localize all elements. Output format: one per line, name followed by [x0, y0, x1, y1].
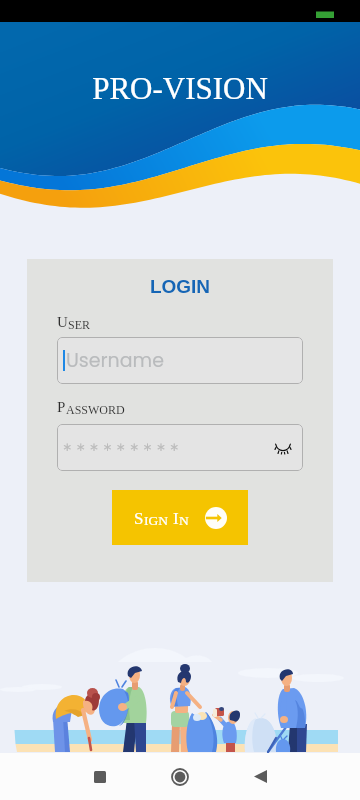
staticText: Username — [66, 347, 164, 374]
button[interactable]: Username — [57, 337, 303, 384]
staticText: PRO-VISION — [0, 71, 360, 105]
button[interactable]: S — [112, 490, 248, 545]
staticText: LOGIN — [27, 276, 333, 297]
staticText: I — [173, 509, 179, 528]
staticText: SER — [68, 318, 91, 331]
button[interactable]: ∗ ∗ ∗ ∗ ∗ ∗ ∗ ∗ ∗ — [57, 424, 303, 471]
staticText: S — [134, 509, 144, 528]
staticText: ∗ ∗ ∗ ∗ ∗ ∗ ∗ ∗ ∗ — [62, 440, 180, 454]
staticText: N — [179, 513, 189, 528]
button[interactable]: Back — [220, 753, 300, 800]
button[interactable]: Show password — [271, 436, 295, 460]
button[interactable]: Home — [140, 753, 220, 800]
staticText: ASSWORD — [66, 403, 125, 416]
button[interactable]: Recent apps — [60, 753, 140, 800]
staticText: P — [57, 399, 66, 416]
staticText: IGN — [144, 513, 168, 528]
staticText: U — [57, 314, 68, 331]
